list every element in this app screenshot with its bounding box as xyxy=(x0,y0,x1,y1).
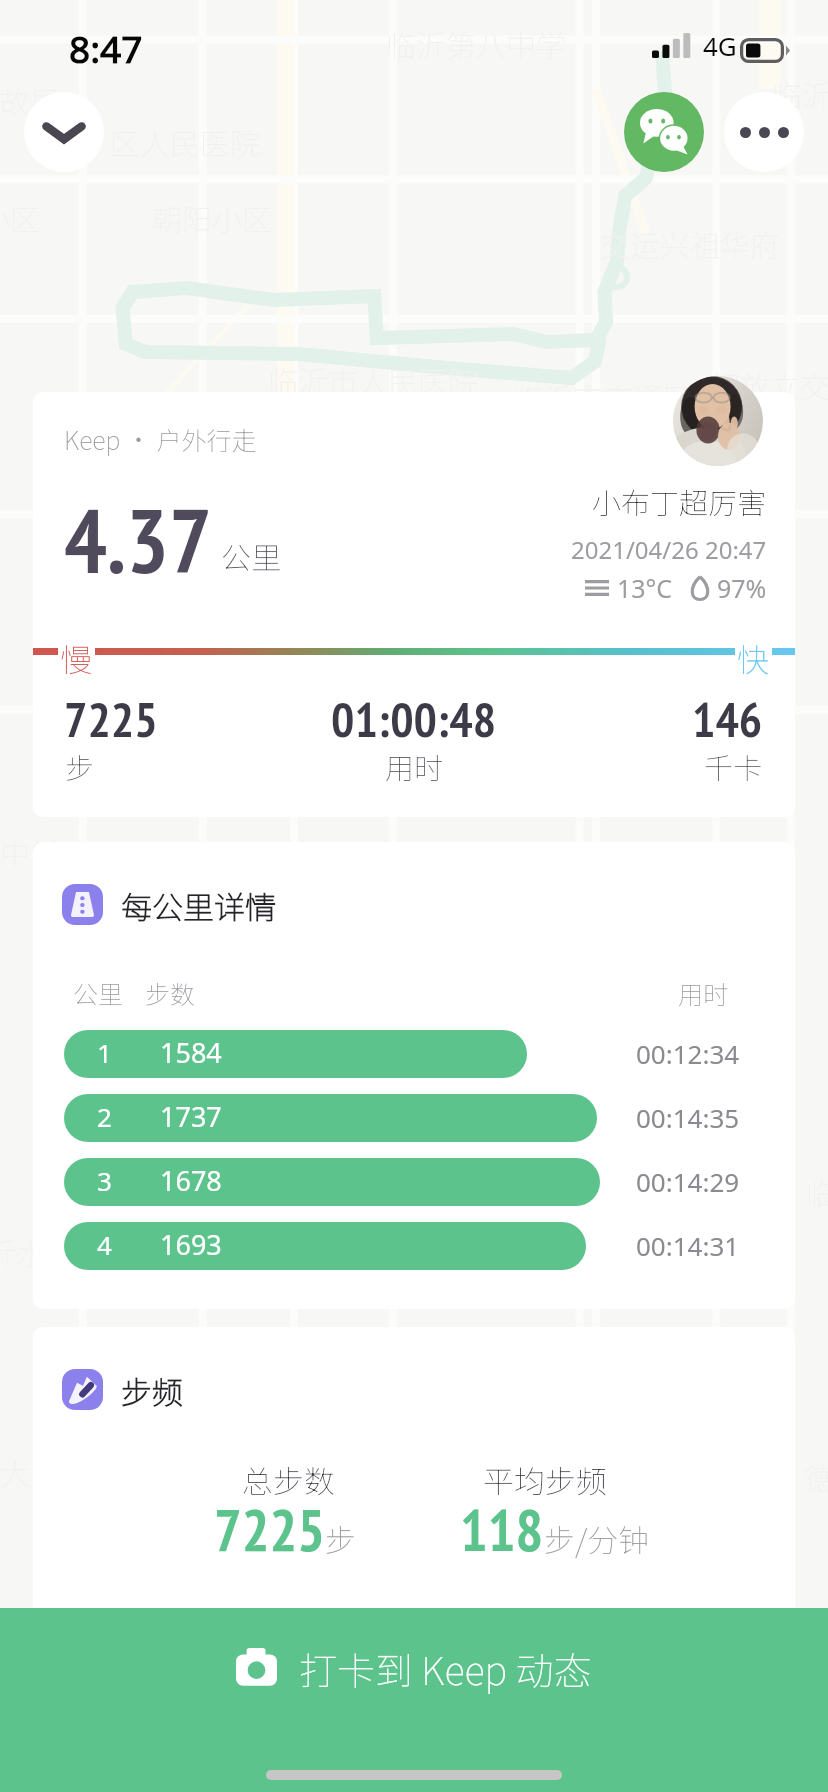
staticText: 13°C xyxy=(617,571,673,605)
staticText: 沂水 xyxy=(0,1230,46,1273)
staticText: 小布丁超厉害 xyxy=(592,480,767,522)
staticText: 步 xyxy=(65,745,95,787)
staticText: 7225 xyxy=(214,1492,325,1567)
staticText: 4 xyxy=(97,1227,112,1262)
button[interactable]: 4 xyxy=(64,1222,586,1270)
staticText: 2021/04/26 20:47 xyxy=(571,533,767,566)
staticText: 打卡到 Keep 动态 xyxy=(299,1641,592,1696)
staticText: 千卡 xyxy=(704,745,763,787)
staticText: 快 xyxy=(737,635,770,681)
staticText: 4.37 xyxy=(64,481,213,597)
staticText: 每公里详情 xyxy=(121,883,276,928)
staticText: 97% xyxy=(717,571,767,605)
staticText: 3 xyxy=(97,1163,112,1198)
staticText: 2 xyxy=(97,1099,112,1134)
staticText: 00:14:35 xyxy=(636,1100,740,1135)
staticText: 1693 xyxy=(160,1226,222,1263)
button[interactable]: 1 xyxy=(64,1030,527,1078)
staticText: 慢 xyxy=(60,635,93,681)
staticText: 公里 xyxy=(221,534,281,577)
staticText: 1678 xyxy=(160,1162,222,1199)
staticText: 步频 xyxy=(121,1368,183,1413)
staticText: 00:14:29 xyxy=(636,1164,740,1199)
staticText: 01:00:48 xyxy=(331,687,497,750)
staticText: 00:14:31 xyxy=(636,1228,740,1263)
button[interactable]: 每公里详情 xyxy=(33,842,795,1309)
staticText: 步 xyxy=(325,1516,356,1561)
staticText: 平均步频 xyxy=(483,1457,607,1502)
staticText: 用时 xyxy=(678,975,729,1011)
staticText: 00:12:34 xyxy=(636,1036,740,1071)
staticText: 4G xyxy=(703,28,737,63)
staticText: 临沂市交通医院 xyxy=(513,375,723,418)
staticText: 146 xyxy=(692,687,763,750)
staticText: 步/分钟 xyxy=(544,1516,650,1561)
staticText: 8:47 xyxy=(69,23,143,73)
staticText: 用时 xyxy=(385,745,444,787)
staticText: 118 xyxy=(460,1492,544,1567)
staticText: 7225 xyxy=(64,687,158,750)
button[interactable]: Collapse xyxy=(24,92,104,172)
button[interactable]: 2 xyxy=(64,1094,597,1142)
button[interactable]: Share to WeChat xyxy=(624,92,704,172)
staticText: 临沂市人民医院 xyxy=(268,358,478,401)
button[interactable]: 3 xyxy=(64,1158,600,1206)
staticText: 1 xyxy=(97,1035,112,1070)
staticText: Keep · 户外行走 xyxy=(64,421,257,457)
staticText: 解放立交 xyxy=(710,363,828,406)
staticText: 交运兴祖华府 xyxy=(600,222,780,265)
staticText: 中学 xyxy=(0,830,60,873)
staticText: 1737 xyxy=(160,1098,222,1135)
staticText: 步数 xyxy=(145,975,196,1011)
staticText: 大元 xyxy=(0,1450,60,1493)
staticText: 公里 xyxy=(73,975,124,1011)
button[interactable]: 步频 xyxy=(33,1327,795,1627)
staticText: 总步数 xyxy=(242,1457,335,1502)
staticText: 1584 xyxy=(160,1034,222,1071)
button[interactable]: 打卡到 Keep 动态 xyxy=(0,1608,828,1792)
staticText: 临沂 xyxy=(772,72,828,115)
staticText: 大元名筑 xyxy=(652,1322,772,1365)
staticText: 之故居 xyxy=(0,78,60,121)
button[interactable]: Keep · 户外行走 xyxy=(33,392,795,817)
button[interactable]: More options xyxy=(724,92,804,172)
